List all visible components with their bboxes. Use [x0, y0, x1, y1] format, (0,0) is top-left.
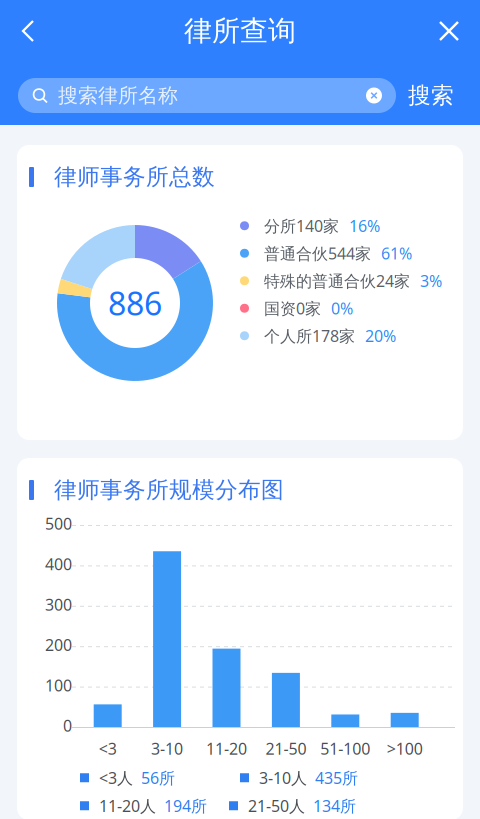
staticText: 国资0家 — [264, 298, 321, 319]
staticText: 300 — [45, 594, 72, 615]
staticText: 61% — [381, 243, 412, 264]
staticText: 分所140家 — [264, 215, 339, 236]
staticText: 16% — [349, 215, 380, 236]
staticText: >100 — [387, 738, 423, 759]
staticText: <3 — [99, 738, 117, 759]
staticText: 21-50人 — [248, 795, 305, 816]
staticText: 搜索 — [408, 82, 454, 109]
staticText: 20% — [365, 325, 396, 346]
button[interactable]: Back — [0, 7, 49, 55]
staticText: 个人所178家 — [264, 325, 355, 346]
staticText: 21-50 — [265, 738, 306, 759]
button[interactable]: Clear search — [366, 87, 382, 103]
staticText: 200 — [45, 634, 72, 655]
staticText: 3-10 — [151, 738, 183, 759]
staticText: 400 — [45, 553, 72, 575]
staticText: 特殊的普通合伙24家 — [264, 270, 410, 291]
staticText: 500 — [45, 513, 72, 534]
staticText: 100 — [45, 675, 72, 696]
staticText: 11-20 — [206, 738, 247, 759]
button[interactable]: Close — [425, 9, 480, 53]
staticText: 律师事务所总数 — [54, 163, 215, 191]
staticText: 134所 — [313, 795, 356, 816]
staticText: 普通合伙544家 — [264, 243, 371, 264]
staticText: 3% — [420, 270, 442, 291]
staticText: 律所查询 — [184, 14, 296, 48]
staticText: 51-100 — [320, 738, 370, 759]
staticText: 194所 — [164, 795, 207, 816]
staticText: 搜索律所名称 — [58, 83, 178, 108]
staticText: <3人 — [99, 767, 133, 788]
staticText: 11-20人 — [99, 795, 156, 816]
staticText: 0 — [63, 715, 72, 736]
staticText: 3-10人 — [259, 767, 307, 788]
staticText: 0% — [331, 298, 353, 319]
staticText: 律师事务所规模分布图 — [54, 476, 284, 504]
staticText: 886 — [108, 282, 162, 324]
staticText: 435所 — [315, 767, 358, 788]
button[interactable]: 搜索 — [408, 82, 454, 109]
staticText: 56所 — [141, 767, 175, 788]
